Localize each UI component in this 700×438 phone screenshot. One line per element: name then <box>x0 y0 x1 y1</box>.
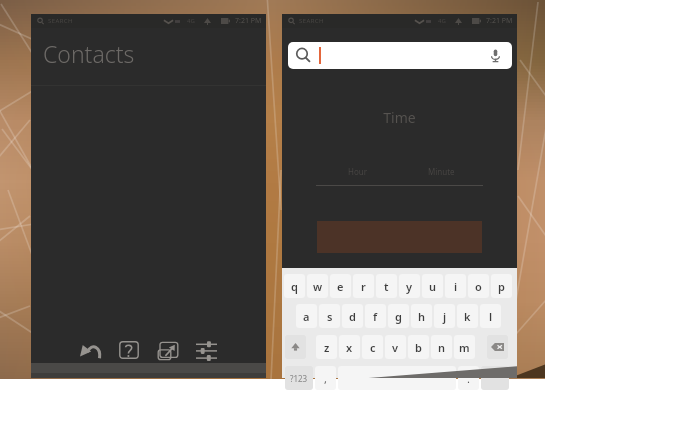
staticText: 4G <box>187 17 195 25</box>
button[interactable]: e <box>330 274 351 298</box>
button[interactable]: Open in new window <box>154 338 182 364</box>
button[interactable]: Symbols <box>285 366 313 390</box>
button[interactable]: Shift <box>285 335 306 359</box>
staticText: a <box>303 309 310 324</box>
button[interactable]: v <box>385 335 406 359</box>
button[interactable]: t <box>376 274 397 298</box>
staticText: z <box>324 340 330 355</box>
staticText: b <box>415 340 422 355</box>
staticText: q <box>291 279 298 294</box>
button[interactable]: Space <box>338 366 456 390</box>
button[interactable]: z <box>316 335 337 359</box>
staticText: o <box>475 279 482 294</box>
button[interactable]: f <box>365 304 386 328</box>
button[interactable]: , <box>315 366 336 390</box>
button[interactable]: j <box>434 304 455 328</box>
button[interactable]: u <box>422 274 443 298</box>
staticText: c <box>370 340 376 355</box>
staticText: m <box>459 340 470 355</box>
staticText: 4G <box>438 17 446 25</box>
staticText: SEARCH <box>48 17 73 25</box>
staticText: p <box>498 279 505 294</box>
staticText: j <box>443 309 447 324</box>
staticText: g <box>395 309 402 324</box>
staticText: d <box>349 309 356 324</box>
staticText: i <box>454 279 458 294</box>
button[interactable]: l <box>480 304 501 328</box>
staticText: s <box>327 309 333 324</box>
button[interactable]: k <box>457 304 478 328</box>
staticText: , <box>324 371 327 386</box>
button[interactable]: i <box>445 274 466 298</box>
staticText: w <box>313 279 323 294</box>
button[interactable]: w <box>307 274 328 298</box>
button[interactable]: x <box>339 335 360 359</box>
button[interactable]: Minute <box>399 165 483 178</box>
staticText: x <box>346 340 353 355</box>
staticText: u <box>429 279 437 294</box>
button[interactable]: Backspace <box>487 335 508 359</box>
staticText: k <box>464 309 471 324</box>
staticText: f <box>373 309 378 324</box>
button[interactable]: n <box>431 335 452 359</box>
button[interactable]: d <box>342 304 363 328</box>
staticText: Contacts <box>43 38 135 69</box>
staticText: t <box>384 279 389 294</box>
staticText: n <box>438 340 446 355</box>
button[interactable]: Hour <box>316 165 399 178</box>
button[interactable] <box>288 42 512 69</box>
button[interactable]: g <box>388 304 409 328</box>
button[interactable]: h <box>411 304 432 328</box>
staticText: l <box>489 309 493 324</box>
staticText: 7:21 PM <box>486 16 513 26</box>
staticText: Hour <box>348 166 368 177</box>
button[interactable]: q <box>284 274 305 298</box>
staticText: e <box>337 279 344 294</box>
staticText: 7:21 PM <box>235 16 262 26</box>
button[interactable]: r <box>353 274 374 298</box>
button[interactable]: b <box>408 335 429 359</box>
button[interactable]: s <box>319 304 340 328</box>
button[interactable]: Help <box>115 337 143 363</box>
button[interactable]: c <box>362 335 383 359</box>
staticText: v <box>392 340 399 355</box>
button[interactable]: . <box>458 366 479 390</box>
button[interactable]: y <box>399 274 420 298</box>
staticText: r <box>361 279 366 294</box>
staticText: y <box>406 279 413 294</box>
staticText: Time <box>282 108 517 127</box>
button[interactable]: m <box>454 335 475 359</box>
button[interactable]: a <box>296 304 317 328</box>
staticText: Minute <box>428 166 455 177</box>
staticText: ?123 <box>290 373 308 384</box>
button[interactable]: Undo <box>76 337 105 363</box>
button[interactable]: p <box>491 274 512 298</box>
button[interactable]: o <box>468 274 489 298</box>
staticText: . <box>467 371 470 386</box>
staticText: SEARCH <box>299 17 324 25</box>
button[interactable]: Settings <box>192 337 221 365</box>
staticText: h <box>418 309 426 324</box>
button[interactable]: Enter <box>481 366 509 390</box>
